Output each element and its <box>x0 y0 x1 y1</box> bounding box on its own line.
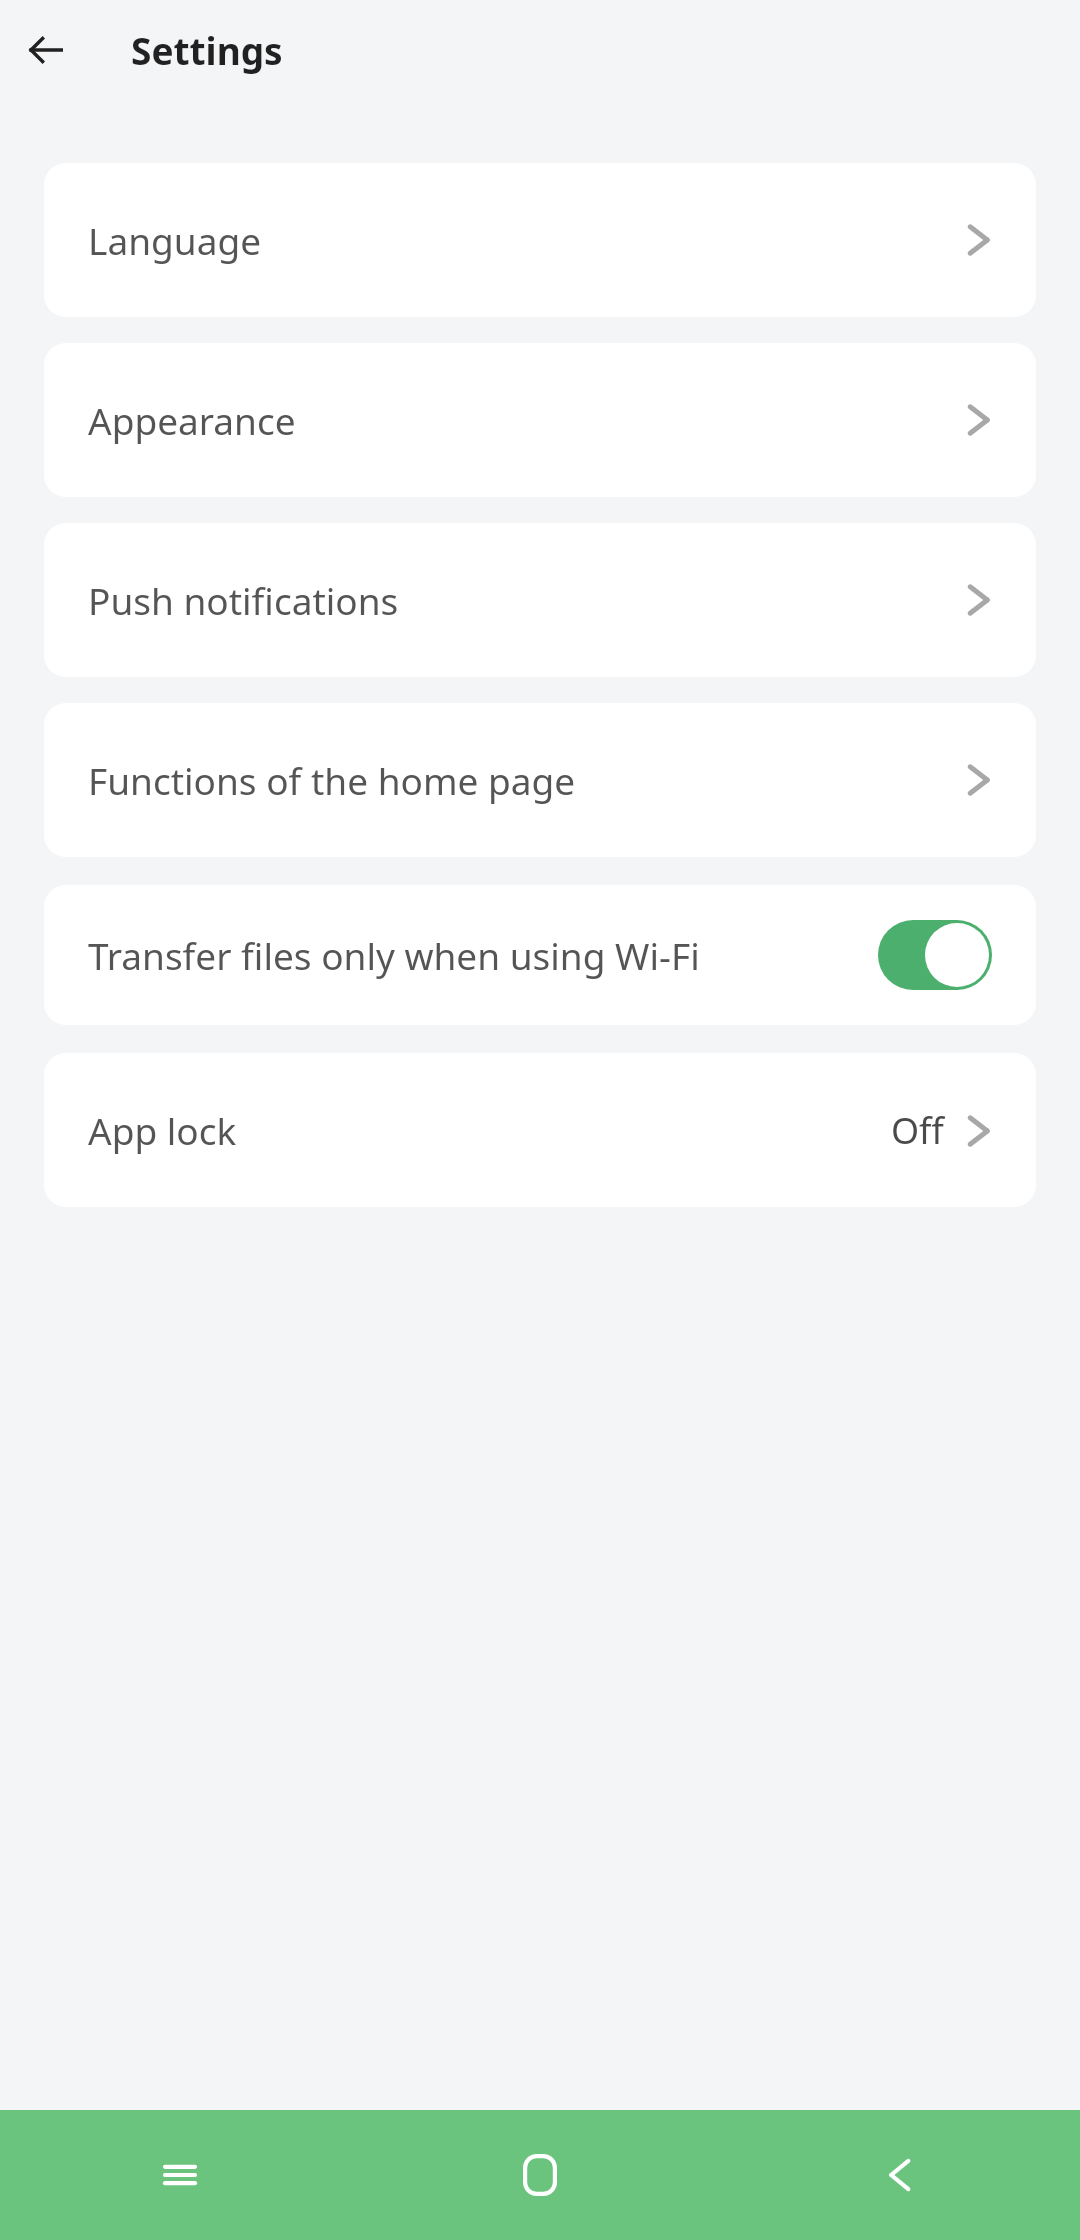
button[interactable]: Home <box>360 2110 720 2240</box>
button[interactable]: Transfer files only when using Wi-Fi <box>44 885 1036 1025</box>
other: Open <box>966 398 992 442</box>
button[interactable]: Appearance <box>44 343 1036 497</box>
other: Open <box>966 578 992 622</box>
staticText: Functions of the home page <box>88 755 576 805</box>
staticText: Push notifications <box>88 575 399 625</box>
button[interactable]: Recent apps <box>0 2110 360 2240</box>
button[interactable]: Language <box>44 163 1036 317</box>
button[interactable]: App lock <box>44 1053 1036 1207</box>
staticText: Transfer files only when using Wi-Fi <box>88 930 700 980</box>
other: Open <box>966 218 992 262</box>
staticText: Appearance <box>88 395 296 445</box>
other: Open <box>966 1109 992 1153</box>
button[interactable]: Push notifications <box>44 523 1036 677</box>
button[interactable]: Back <box>18 22 74 78</box>
button[interactable]: Back <box>720 2110 1080 2240</box>
staticText: Language <box>88 215 262 265</box>
button[interactable]: Transfer files only when using Wi-Fi tog… <box>878 920 992 990</box>
staticText: Settings <box>131 25 283 75</box>
other: Open <box>966 758 992 802</box>
staticText: App lock <box>88 1105 237 1155</box>
button[interactable]: Functions of the home page <box>44 703 1036 857</box>
staticText: Off <box>891 1106 944 1155</box>
